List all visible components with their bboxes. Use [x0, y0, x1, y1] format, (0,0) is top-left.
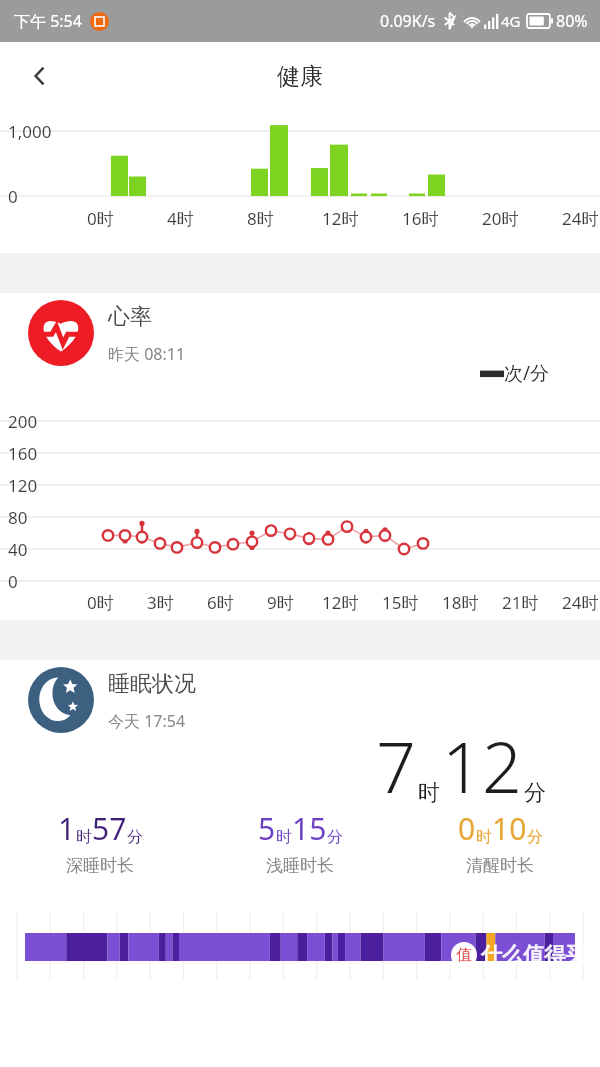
staticText: 6时 — [207, 591, 234, 614]
staticText: 时 — [76, 827, 92, 847]
staticText: 次/分 — [504, 360, 550, 386]
staticText: 0 — [8, 185, 18, 208]
staticText: 4时 — [167, 207, 194, 230]
staticText: 值 — [456, 945, 472, 965]
staticText: 120 — [8, 474, 38, 497]
staticText: 健康 — [277, 62, 323, 91]
staticText: 57 — [92, 808, 127, 849]
button[interactable]: 返回 — [14, 50, 66, 102]
staticText: 分 — [127, 827, 143, 847]
staticText: 12时 — [322, 207, 359, 230]
staticText: 160 — [8, 442, 38, 465]
staticText: 20时 — [482, 207, 519, 230]
staticText: 16时 — [402, 207, 439, 230]
staticText: 0 — [8, 570, 18, 593]
staticText: 分 — [524, 779, 546, 807]
staticText: 15 — [292, 808, 327, 849]
staticText: 昨天 08:11 — [108, 343, 186, 365]
staticText: 12 — [442, 718, 522, 813]
button[interactable]: 5 — [200, 808, 400, 876]
staticText: 12时 — [322, 591, 359, 614]
button[interactable]: 心率 — [28, 300, 94, 366]
staticText: 浅睡时长 — [266, 855, 334, 876]
staticText: 80 — [8, 506, 28, 529]
staticText: 80% — [556, 10, 588, 32]
staticText: 5 — [258, 808, 276, 849]
staticText: 1,000 — [8, 120, 52, 143]
button[interactable]: 0 — [400, 808, 600, 876]
staticText: 0时 — [87, 591, 114, 614]
staticText: 24时 — [562, 207, 599, 230]
staticText: 今天 17:54 — [108, 710, 186, 732]
staticText: 睡眠状况 — [108, 670, 196, 698]
staticText: 分 — [527, 827, 543, 847]
staticText: 清醒时长 — [466, 855, 534, 876]
staticText: 心率 — [108, 303, 152, 331]
staticText: 什么值得买 — [481, 942, 586, 968]
staticText: 7 — [376, 718, 416, 813]
staticText: 3时 — [147, 591, 174, 614]
staticText: 下午 5:54 — [14, 10, 82, 32]
staticText: 时 — [276, 827, 292, 847]
staticText: 深睡时长 — [66, 855, 134, 876]
staticText: 0时 — [87, 207, 114, 230]
staticText: 18时 — [442, 591, 479, 614]
staticText: 10 — [492, 808, 527, 849]
staticText: 4G — [501, 11, 521, 31]
staticText: 分 — [327, 827, 343, 847]
staticText: 200 — [8, 410, 38, 433]
staticText: 0 — [458, 808, 476, 849]
staticText: 9时 — [267, 591, 294, 614]
button[interactable]: 睡眠状况 — [28, 667, 94, 733]
staticText: 时 — [476, 827, 492, 847]
staticText: 21时 — [502, 591, 539, 614]
staticText: 8时 — [247, 207, 274, 230]
staticText: 0.09K/s — [380, 10, 436, 32]
staticText: 15时 — [382, 591, 419, 614]
button[interactable]: 1 — [0, 808, 200, 876]
staticText: 1 — [58, 808, 76, 849]
staticText: 24时 — [562, 591, 599, 614]
staticText: 40 — [8, 538, 28, 561]
staticText: 时 — [418, 779, 440, 807]
